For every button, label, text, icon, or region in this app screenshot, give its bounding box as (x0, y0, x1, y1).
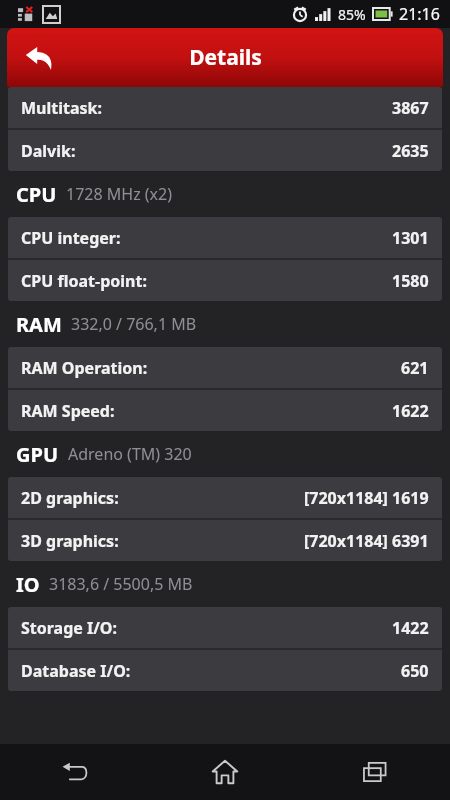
staticText: Adreno (TM) 320 (68, 443, 192, 465)
button[interactable]: Recent apps (300, 744, 450, 800)
button[interactable]: Back (0, 744, 150, 800)
button[interactable]: Back (13, 32, 65, 84)
staticText: RAM Operation: (21, 357, 148, 379)
staticText: [720x1184] 1619 (304, 487, 429, 509)
staticText: 3183,6 / 5500,5 MB (49, 573, 193, 595)
staticText: CPU float-point: (21, 270, 147, 292)
staticText: Details (189, 43, 262, 72)
staticText: GPU (16, 441, 59, 468)
staticText: RAM Speed: (21, 400, 115, 422)
staticText: 1422 (392, 617, 429, 639)
button[interactable]: Dalvik: (8, 130, 442, 171)
button[interactable]: Storage I/O: (8, 607, 442, 648)
staticText: IO (16, 571, 40, 598)
staticText: 1622 (392, 400, 429, 422)
staticText: CPU (16, 181, 57, 208)
staticText: 621 (401, 357, 429, 379)
button[interactable]: 3D graphics: (8, 520, 442, 561)
staticText: 3D graphics: (21, 530, 119, 552)
staticText: 3867 (392, 97, 429, 119)
staticText: 1580 (392, 270, 429, 292)
staticText: Dalvik: (21, 140, 76, 162)
staticText: 650 (401, 660, 429, 682)
staticText: 2635 (392, 140, 429, 162)
staticText: CPU integer: (21, 227, 121, 249)
button[interactable]: Multitask: (8, 87, 442, 128)
button[interactable]: Database I/O: (8, 650, 442, 691)
staticText: RAM (16, 311, 62, 338)
staticText: 1301 (392, 227, 429, 249)
staticText: 2D graphics: (21, 487, 119, 509)
button[interactable]: Home (150, 744, 300, 800)
staticText: [720x1184] 6391 (304, 530, 429, 552)
button[interactable]: CPU integer: (8, 217, 442, 258)
staticText: 85% (338, 5, 366, 24)
staticText: Multitask: (21, 97, 102, 119)
button[interactable]: 2D graphics: (8, 477, 442, 518)
button[interactable]: CPU float-point: (8, 260, 442, 301)
staticText: 21:16 (399, 3, 440, 25)
staticText: Database I/O: (21, 660, 131, 682)
button[interactable]: RAM Speed: (8, 390, 442, 431)
button[interactable]: RAM Operation: (8, 347, 442, 388)
staticText: 1728 MHz (x2) (66, 183, 173, 205)
staticText: Storage I/O: (21, 617, 118, 639)
staticText: 332,0 / 766,1 MB (71, 313, 197, 335)
